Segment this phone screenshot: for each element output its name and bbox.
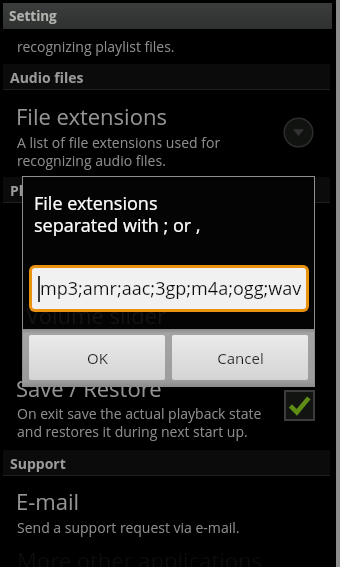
staticText: recognizing playlist files. [17, 37, 175, 56]
staticText: Save / Restore [16, 373, 162, 403]
button[interactable]: Save and restore playback state [284, 390, 315, 421]
staticText: mp3;amr;aac;3gp;m4a;ogg;wav [40, 276, 302, 301]
staticText: On exit save the actual playback state a… [17, 404, 262, 441]
button[interactable]: mp3;amr;aac;3gp;m4a;ogg;wav [32, 268, 306, 309]
staticText: Volume slider [26, 300, 166, 330]
staticText: Cancel [217, 348, 264, 368]
button[interactable]: Expand file extension list [283, 117, 314, 148]
button[interactable]: OK [29, 335, 165, 380]
staticText: Support [10, 454, 66, 473]
staticText: OK [87, 348, 108, 368]
staticText: A list of file extensions used for recog… [17, 133, 221, 170]
staticText: Playback [10, 181, 73, 200]
button[interactable]: Cancel [172, 335, 308, 380]
staticText: Setting [9, 7, 57, 25]
staticText: Audio files [10, 68, 84, 87]
staticText: File extensions separated with ; or , [34, 191, 201, 238]
staticText: Send a support request via e-mail. [17, 518, 240, 537]
button[interactable]: Setting [3, 3, 332, 29]
staticText: More other applications [17, 545, 262, 567]
staticText: E-mail [16, 486, 80, 516]
staticText: File extensions [16, 101, 167, 131]
